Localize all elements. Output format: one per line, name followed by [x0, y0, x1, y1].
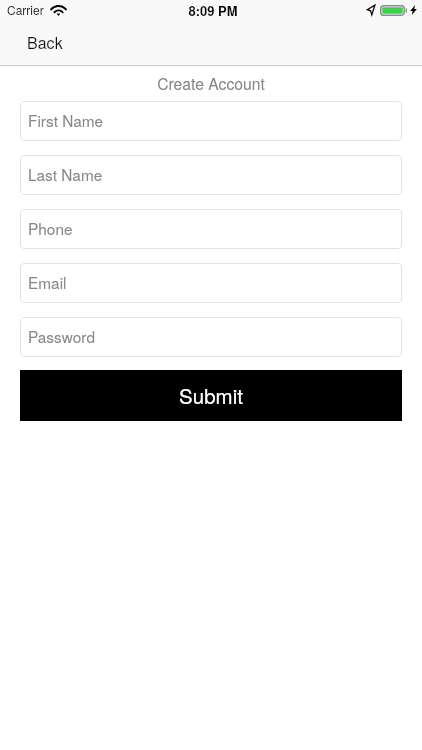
button[interactable]: Submit [20, 370, 402, 421]
button[interactable]: Password [20, 317, 402, 357]
staticText: Submit [20, 380, 402, 409]
button[interactable]: Back [11, 20, 79, 65]
staticText: Back [27, 31, 63, 54]
staticText: Password [28, 325, 95, 347]
staticText: Phone [28, 217, 73, 239]
staticText: Create Account [0, 72, 422, 94]
button[interactable]: Last Name [20, 155, 402, 195]
staticText: First Name [28, 109, 104, 131]
staticText: 8:09 PM [2, 1, 422, 20]
button[interactable]: Email [20, 263, 402, 303]
other: Charging [410, 5, 417, 15]
staticText: Email [28, 271, 67, 293]
staticText: Carrier [7, 1, 44, 18]
other: Wi-Fi signal [51, 5, 66, 16]
button[interactable]: First Name [20, 101, 402, 141]
other: Battery full [380, 5, 407, 16]
staticText: Last Name [28, 163, 103, 185]
other: Location services active [367, 5, 375, 15]
button[interactable]: Phone [20, 209, 402, 249]
